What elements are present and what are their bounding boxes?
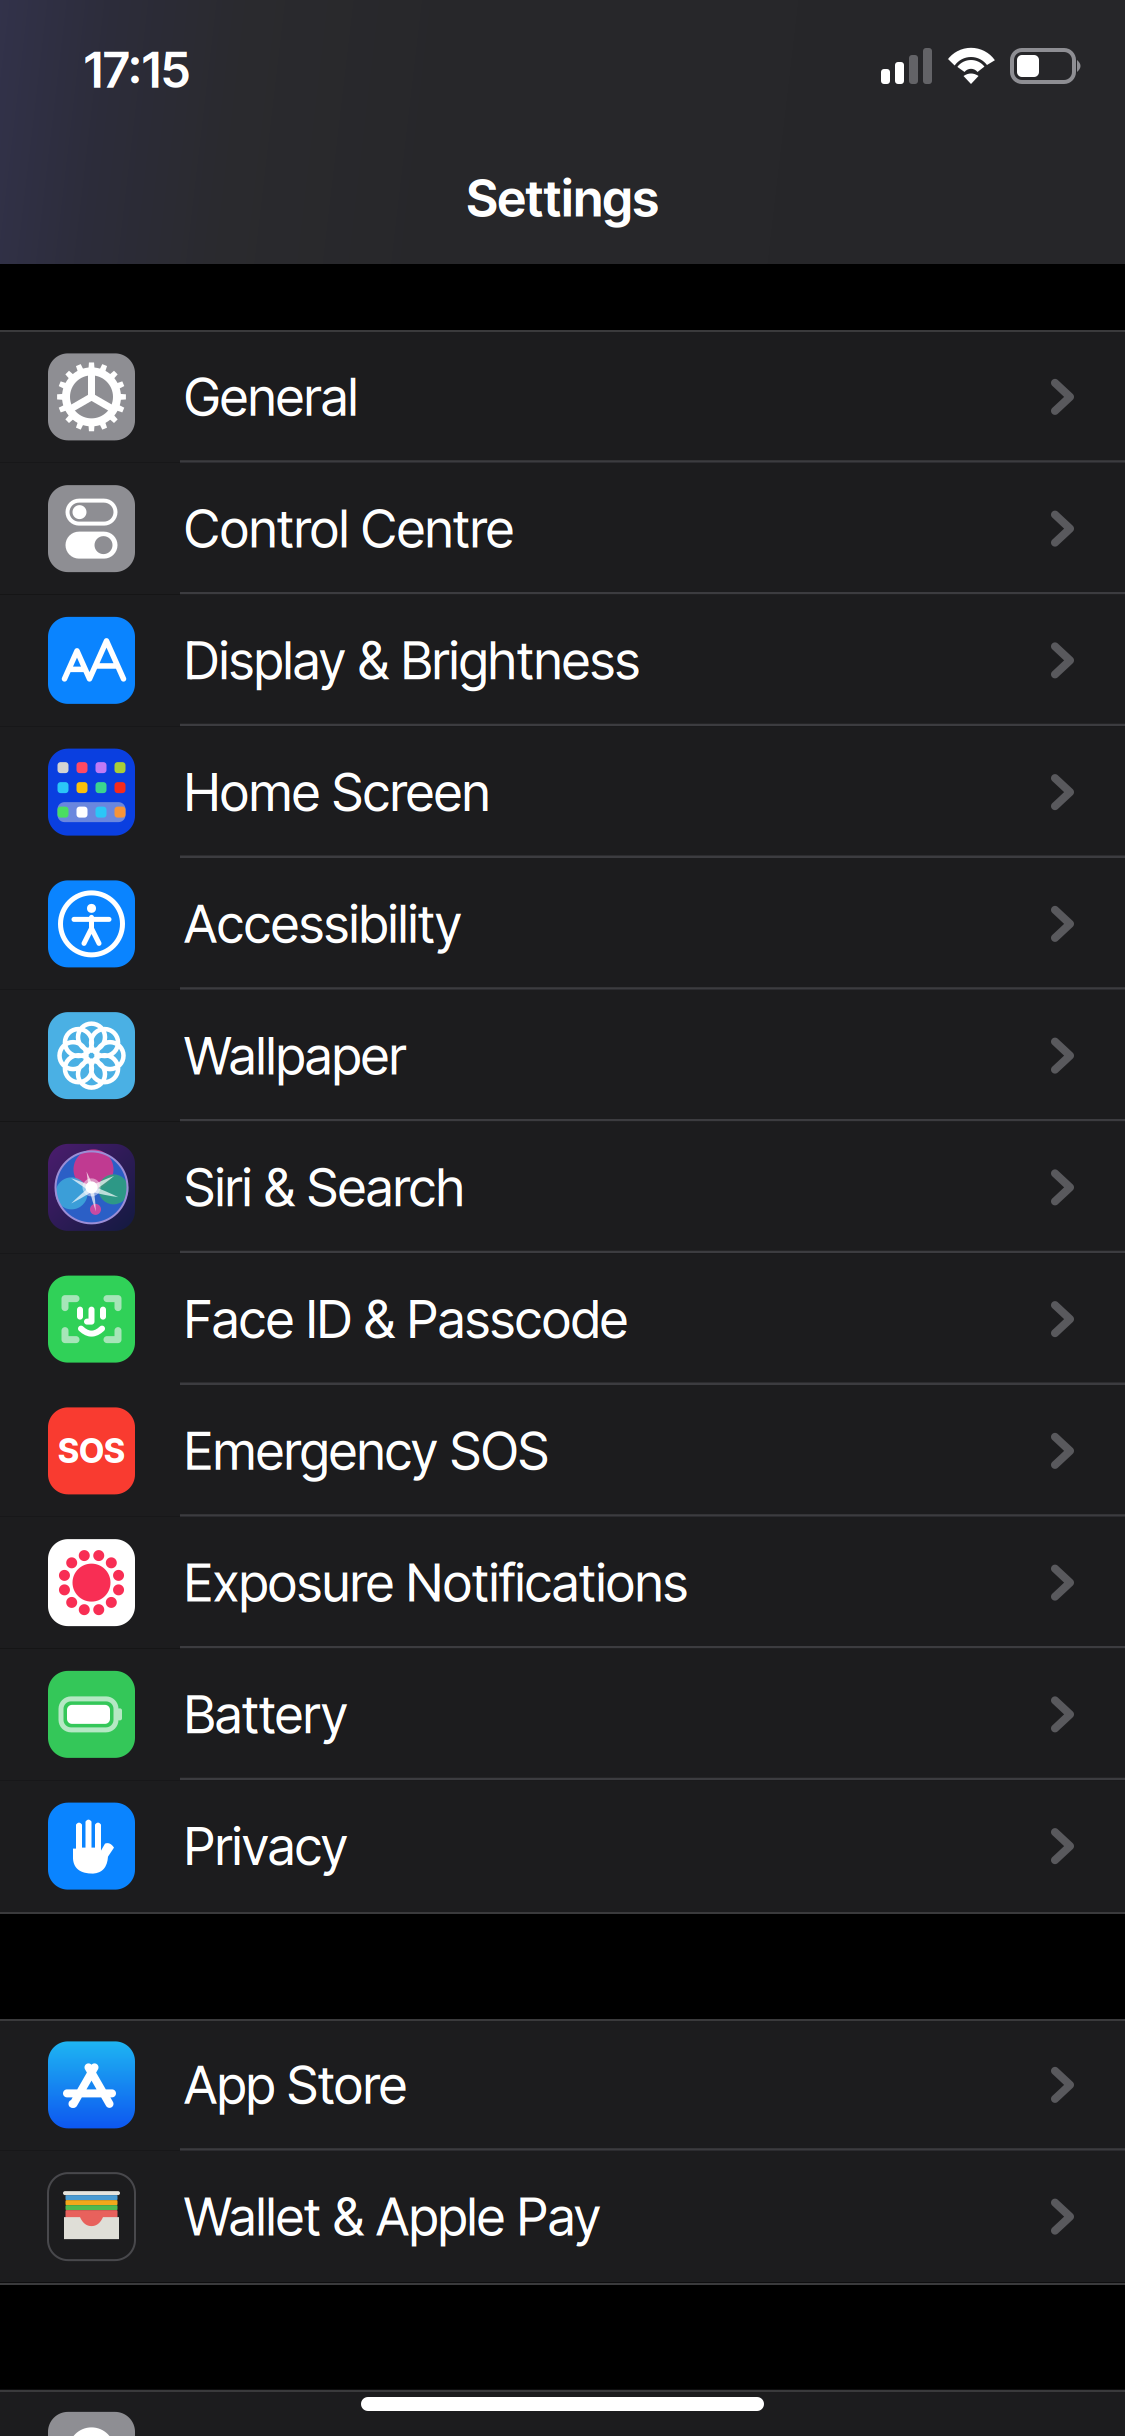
button[interactable]: Face ID & Passcode [0,1253,1125,1385]
staticText: 17:15 [84,40,190,100]
staticText: Wallet & Apple Pay [184,2185,601,2248]
staticText: SOS [58,1431,125,1471]
button[interactable]: App Store [0,2019,1125,2151]
staticText: Privacy [184,1815,348,1878]
button[interactable]: General [0,331,1125,463]
button[interactable]: Battery [0,1648,1125,1780]
button[interactable]: Display & Brightness [0,594,1125,726]
staticText: Wallpaper [184,1024,406,1087]
button[interactable]: Exposure Notifications [0,1517,1125,1649]
button[interactable]: SOS [0,1385,1125,1517]
button[interactable]: Accessibility [0,858,1125,990]
button[interactable]: Passwords [0,2389,1125,2436]
staticText: Siri & Search [184,1156,465,1219]
button[interactable]: Siri & Search [0,1121,1125,1253]
staticText: Emergency SOS [184,1419,549,1482]
staticText: Face ID & Passcode [184,1288,628,1351]
staticText: App Store [184,2053,407,2116]
button[interactable]: Control Centre [0,463,1125,595]
button[interactable]: Privacy [0,1780,1125,1912]
staticText: Accessibility [184,892,462,955]
button[interactable]: Wallet & Apple Pay [0,2151,1125,2283]
button[interactable]: Home Screen [0,726,1125,858]
staticText: Control Centre [184,497,514,560]
staticText: Display & Brightness [184,629,640,692]
staticText: General [184,365,358,428]
staticText: Battery [184,1683,348,1746]
button[interactable]: Wallpaper [0,990,1125,1122]
staticText: Exposure Notifications [184,1551,688,1614]
staticText: Settings [466,167,658,229]
staticText: Home Screen [184,761,490,824]
